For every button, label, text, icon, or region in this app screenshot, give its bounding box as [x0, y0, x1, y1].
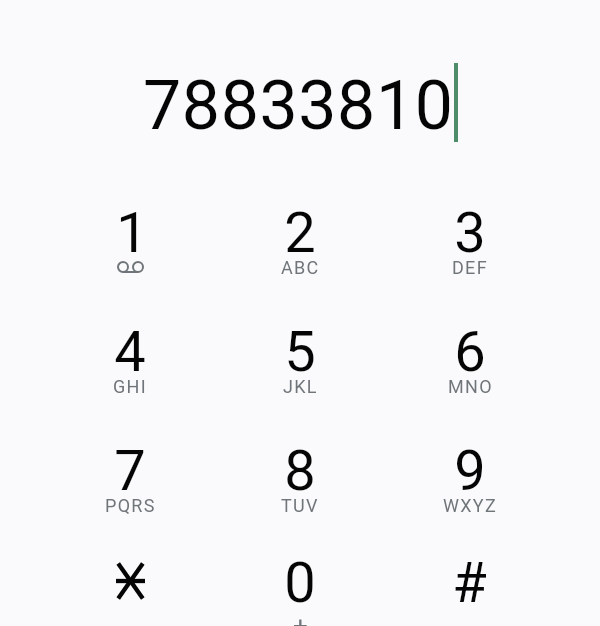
staticText: 9 — [454, 438, 486, 504]
staticText: 1 — [116, 200, 148, 266]
button[interactable]: Key 8 — [216, 412, 384, 530]
staticText: 3 — [454, 200, 486, 266]
staticText: DEF — [452, 257, 488, 278]
staticText: 0 — [284, 550, 316, 616]
staticText: 4 — [114, 319, 146, 385]
button[interactable]: Key 9 — [386, 412, 554, 530]
button[interactable]: Key 4 — [46, 293, 214, 411]
button[interactable]: Key 5 — [216, 293, 384, 411]
staticText: # — [452, 550, 487, 616]
button[interactable]: Key # — [386, 524, 554, 626]
staticText: 8 — [284, 438, 316, 504]
button[interactable]: Key 6 — [386, 293, 554, 411]
staticText: 6 — [454, 319, 486, 385]
button[interactable]: 78833810 — [0, 66, 600, 148]
staticText: PQRS — [105, 495, 156, 516]
button[interactable]: Key 3 — [386, 174, 554, 292]
staticText: + — [293, 611, 308, 626]
staticText: JKL — [283, 376, 318, 397]
staticText: 2 — [284, 200, 316, 266]
button[interactable]: Key 0 — [216, 524, 384, 626]
staticText: GHI — [113, 376, 147, 397]
staticText: 5 — [284, 319, 316, 385]
button[interactable]: Key 1 — [46, 174, 214, 292]
staticText: ABC — [281, 257, 320, 278]
button[interactable]: Key 2 — [216, 174, 384, 292]
staticText: 78833810 — [143, 66, 454, 146]
staticText: MNO — [448, 376, 493, 397]
button[interactable]: Key 7 — [46, 412, 214, 530]
staticText: WXYZ — [443, 495, 498, 516]
staticText: 7 — [114, 438, 146, 504]
button[interactable]: Key * — [46, 524, 214, 626]
staticText: TUV — [281, 495, 319, 516]
